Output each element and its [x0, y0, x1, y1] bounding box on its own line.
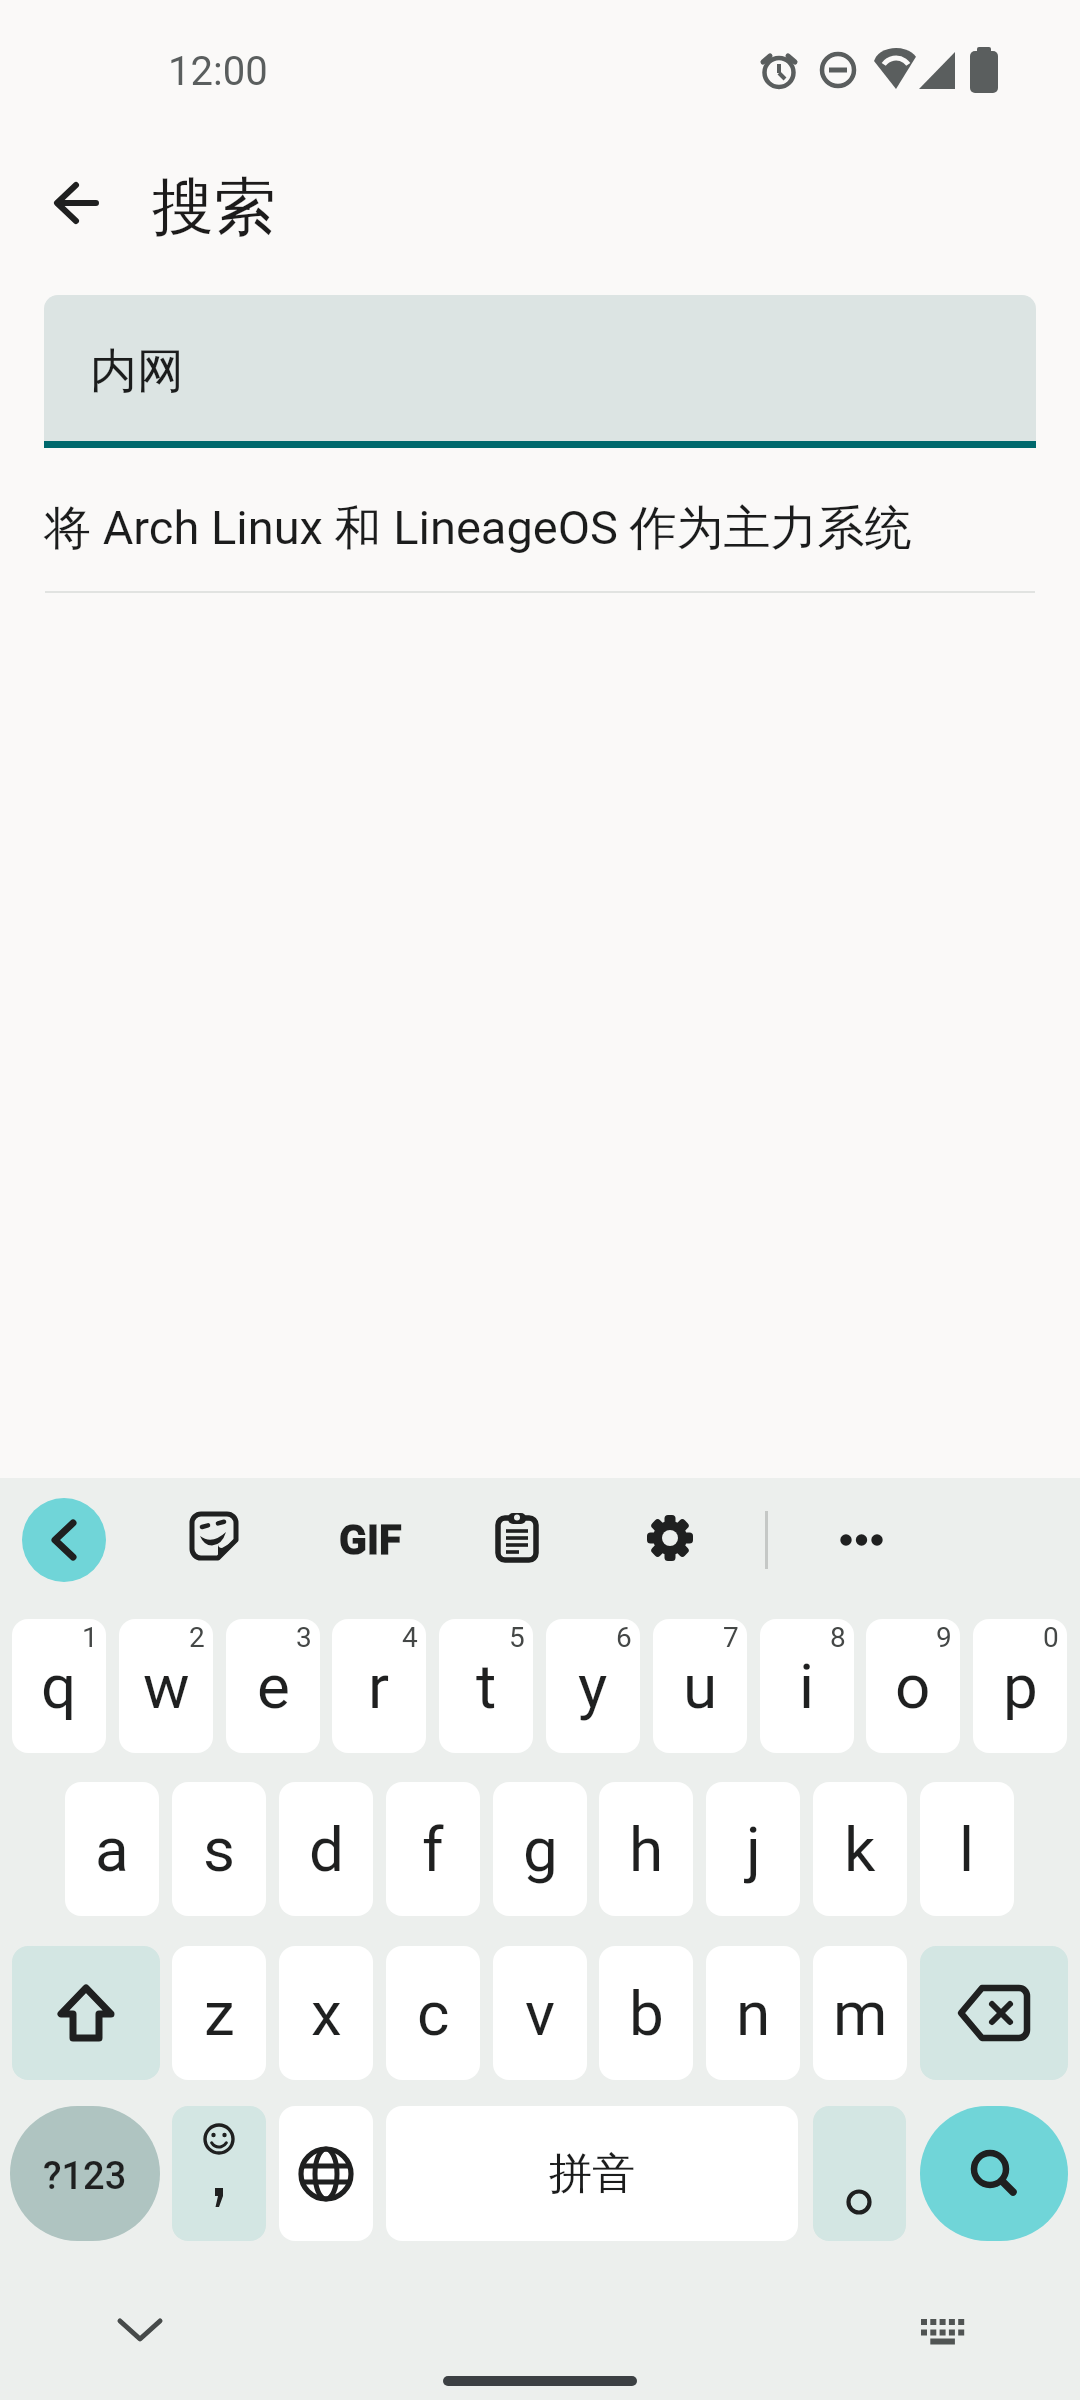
- staticText: d: [309, 1813, 344, 1886]
- staticText: f: [422, 1813, 444, 1886]
- staticText: z: [204, 1977, 235, 2050]
- staticText: 0: [1043, 1621, 1059, 1654]
- staticText: b: [629, 1977, 664, 2050]
- button[interactable]: w: [119, 1619, 213, 1753]
- staticText: p: [1003, 1650, 1038, 1723]
- button[interactable]: s: [172, 1782, 266, 1916]
- button[interactable]: r: [332, 1619, 426, 1753]
- staticText: c: [417, 1977, 450, 2050]
- staticText: o: [895, 1650, 931, 1723]
- staticText: m: [833, 1977, 888, 2050]
- staticText: q: [41, 1650, 77, 1723]
- staticText: a: [95, 1813, 129, 1886]
- staticText: e: [257, 1650, 290, 1723]
- button[interactable]: [920, 2106, 1068, 2241]
- staticText: 5: [509, 1621, 525, 1654]
- staticText: 2: [189, 1621, 205, 1654]
- button[interactable]: [22, 1498, 106, 1582]
- staticText: 1: [82, 1621, 98, 1654]
- button[interactable]: n: [706, 1946, 800, 2080]
- button[interactable]: z: [172, 1946, 266, 2080]
- button[interactable]: [279, 2106, 373, 2241]
- staticText: 搜索: [152, 168, 276, 246]
- staticText: 4: [402, 1621, 418, 1654]
- staticText: h: [629, 1813, 664, 1886]
- button[interactable]: GIF: [330, 1508, 410, 1572]
- button[interactable]: f: [386, 1782, 480, 1916]
- staticText: 6: [616, 1621, 632, 1654]
- button[interactable]: o: [866, 1619, 960, 1753]
- staticText: x: [311, 1977, 342, 2050]
- button[interactable]: p: [973, 1619, 1067, 1753]
- staticText: k: [844, 1813, 876, 1886]
- button[interactable]: [12, 1946, 160, 2080]
- staticText: ?123: [43, 2154, 127, 2199]
- staticText: i: [799, 1650, 815, 1723]
- staticText: 内网: [90, 342, 184, 401]
- staticText: t: [476, 1650, 497, 1723]
- staticText: 将 Arch Linux 和 LineageOS 作为主力系统: [44, 499, 912, 558]
- button[interactable]: ?123: [10, 2106, 160, 2241]
- button[interactable]: [898, 2308, 986, 2356]
- button[interactable]: [646, 1514, 698, 1566]
- staticText: 拼音: [549, 2147, 635, 2201]
- button[interactable]: e: [226, 1619, 320, 1753]
- button[interactable]: [40, 167, 112, 239]
- button[interactable]: m: [813, 1946, 907, 2080]
- button[interactable]: d: [279, 1782, 373, 1916]
- button[interactable]: [190, 1512, 246, 1568]
- staticText: 12:00: [168, 48, 268, 95]
- button[interactable]: q: [12, 1619, 106, 1753]
- button[interactable]: y: [546, 1619, 640, 1753]
- button[interactable]: [826, 1526, 896, 1554]
- button[interactable]: h: [599, 1782, 693, 1916]
- button[interactable]: [495, 1512, 545, 1568]
- staticText: v: [525, 1977, 556, 2050]
- staticText: w: [143, 1650, 190, 1723]
- button[interactable]: a: [65, 1782, 159, 1916]
- staticText: 3: [296, 1621, 312, 1654]
- button[interactable]: [108, 2306, 172, 2354]
- staticText: 9: [936, 1621, 952, 1654]
- button[interactable]: l: [920, 1782, 1014, 1916]
- button[interactable]: 内网: [44, 295, 1036, 448]
- button[interactable]: [920, 1946, 1068, 2080]
- button[interactable]: t: [439, 1619, 533, 1753]
- button[interactable]: b: [599, 1946, 693, 2080]
- staticText: u: [683, 1650, 718, 1723]
- button[interactable]: 拼音: [386, 2106, 798, 2241]
- staticText: 8: [830, 1621, 846, 1654]
- staticText: r: [368, 1650, 390, 1723]
- button[interactable]: g: [493, 1782, 587, 1916]
- button[interactable]: [172, 2106, 266, 2241]
- button[interactable]: i: [760, 1619, 854, 1753]
- button[interactable]: k: [813, 1782, 907, 1916]
- staticText: GIF: [339, 1516, 402, 1564]
- button[interactable]: x: [279, 1946, 373, 2080]
- staticText: j: [746, 1813, 761, 1886]
- button[interactable]: c: [386, 1946, 480, 2080]
- button[interactable]: 将 Arch Linux 和 LineageOS 作为主力系统: [0, 478, 1080, 591]
- staticText: n: [736, 1977, 771, 2050]
- staticText: g: [523, 1813, 558, 1886]
- staticText: 7: [723, 1621, 739, 1654]
- staticText: s: [203, 1813, 235, 1886]
- staticText: l: [959, 1813, 975, 1886]
- button[interactable]: [813, 2106, 906, 2241]
- button[interactable]: j: [706, 1782, 800, 1916]
- button[interactable]: u: [653, 1619, 747, 1753]
- button[interactable]: v: [493, 1946, 587, 2080]
- staticText: y: [578, 1650, 608, 1723]
